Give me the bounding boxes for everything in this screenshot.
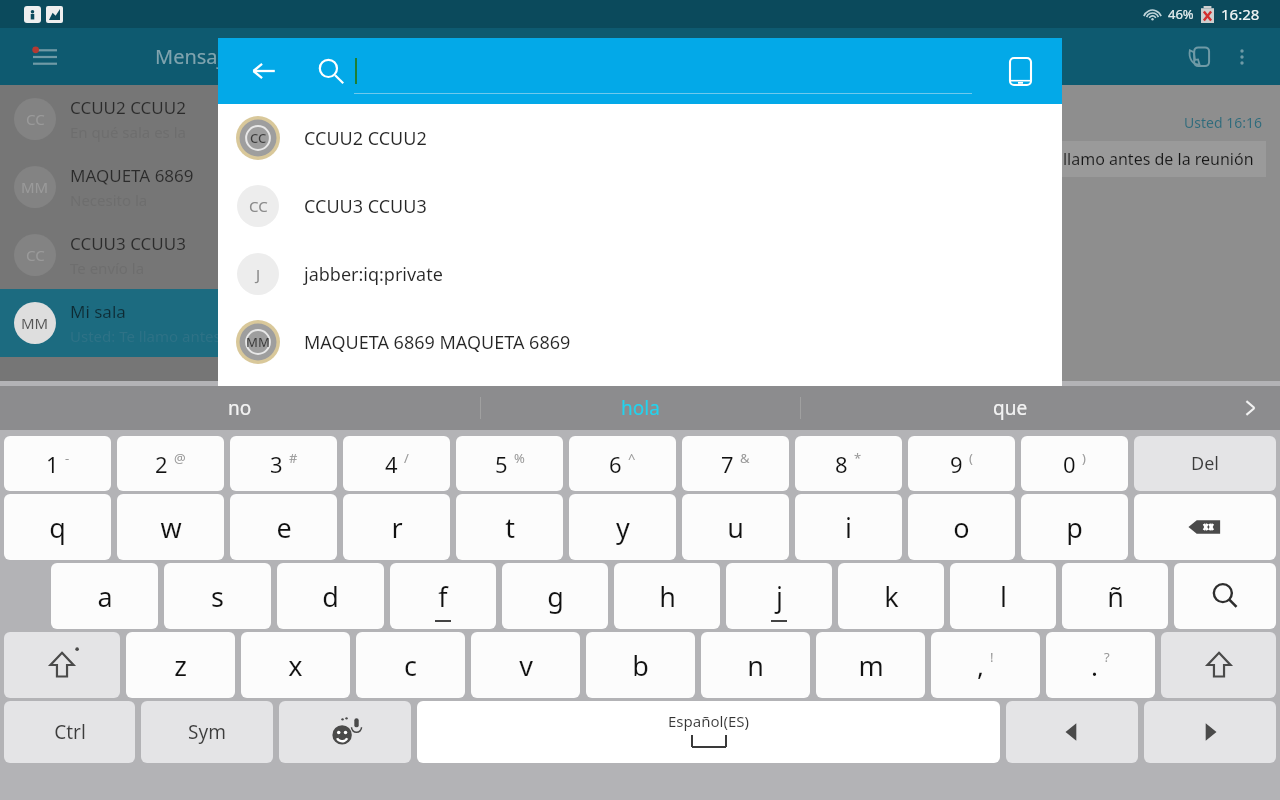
staticText: c [404, 647, 417, 684]
button[interactable]: ñ [1062, 563, 1168, 629]
button[interactable]: Emoji and voice input [279, 701, 411, 763]
button[interactable]: 1 [4, 436, 111, 491]
staticText: MAQUETA 6869 MAQUETA 6869 [304, 330, 571, 355]
button[interactable]: g [502, 563, 608, 629]
button[interactable]: f [390, 563, 496, 629]
button[interactable]: k [838, 563, 944, 629]
button[interactable]: MM [218, 308, 1062, 376]
staticText: % [514, 449, 525, 467]
button[interactable]: 3 [230, 436, 337, 491]
staticText: CCUU3 CCUU3 [304, 194, 427, 219]
staticText: u [727, 509, 744, 546]
staticText: z [174, 647, 187, 684]
staticText: o [953, 509, 970, 546]
button[interactable]: More suggestions [1220, 386, 1280, 430]
button[interactable]: u [682, 494, 789, 560]
staticText: ñ [1107, 578, 1124, 615]
button[interactable]: CC [0, 221, 232, 289]
staticText: h [659, 578, 676, 615]
button[interactable]: d [277, 563, 384, 629]
button[interactable]: n [701, 632, 810, 698]
button[interactable]: t [456, 494, 563, 560]
button[interactable]: a [51, 563, 158, 629]
button[interactable]: q [4, 494, 111, 560]
button[interactable]: 9 [908, 436, 1015, 491]
button[interactable]: p [1021, 494, 1128, 560]
button[interactable]: no [0, 386, 480, 430]
staticText: ^ [628, 449, 636, 467]
button[interactable]: Call [1176, 34, 1222, 80]
button[interactable]: Space [417, 701, 1000, 763]
button[interactable]: 7 [682, 436, 789, 491]
button[interactable]: Ctrl [4, 701, 135, 763]
button[interactable]: hola [481, 386, 800, 430]
staticText: Te envío la documentación [70, 258, 232, 278]
staticText: MM [21, 177, 49, 197]
button[interactable]: Search [1174, 563, 1276, 629]
button[interactable]: c [356, 632, 465, 698]
button[interactable]: . [1046, 632, 1155, 698]
button[interactable]: que [801, 386, 1220, 430]
button[interactable]: Shift [1161, 632, 1276, 698]
button[interactable]: Device [998, 49, 1042, 93]
button[interactable]: v [471, 632, 580, 698]
button[interactable]: Shift [4, 632, 120, 698]
staticText: que [993, 395, 1028, 421]
button[interactable]: Backspace [1134, 494, 1276, 560]
staticText: q [49, 509, 66, 546]
button[interactable]: 5 [456, 436, 563, 491]
staticText: e [276, 509, 292, 546]
staticText: Usted 16:16 [1184, 113, 1262, 132]
button[interactable]: e [230, 494, 337, 560]
button[interactable]: , [931, 632, 1040, 698]
button[interactable]: b [586, 632, 695, 698]
staticText: 5 [495, 449, 508, 479]
button[interactable]: 6 [569, 436, 676, 491]
staticText: Mi sala [70, 300, 126, 323]
button[interactable]: Cursor left [1006, 701, 1138, 763]
button[interactable]: x [241, 632, 350, 698]
staticText: d [322, 578, 339, 615]
staticText: Necesito la presentación [70, 190, 232, 210]
staticText: & [740, 449, 750, 467]
staticText: i [845, 509, 852, 546]
button[interactable]: MM [0, 289, 232, 357]
staticText: Usted: Te llamo antes de la reunión [70, 326, 232, 346]
staticText: - [65, 449, 70, 467]
button[interactable]: MM [0, 153, 232, 221]
button[interactable]: o [908, 494, 1015, 560]
staticText: Mensajes [155, 43, 244, 70]
staticText: n [747, 647, 764, 684]
staticText: v [519, 647, 533, 684]
button[interactable]: Cursor right [1144, 701, 1276, 763]
staticText: y [616, 509, 630, 546]
button[interactable]: 2 [117, 436, 224, 491]
button[interactable]: Del [1134, 436, 1276, 491]
button[interactable]: 0 [1021, 436, 1128, 491]
button[interactable]: w [117, 494, 224, 560]
button[interactable]: 8 [795, 436, 902, 491]
button[interactable]: CC [0, 85, 232, 153]
button[interactable]: Back [244, 51, 284, 91]
button[interactable]: r [343, 494, 450, 560]
button[interactable]: z [126, 632, 235, 698]
staticText: x [288, 647, 303, 684]
button[interactable]: j [726, 563, 832, 629]
button[interactable]: i [795, 494, 902, 560]
staticText: Sym [188, 719, 226, 745]
button[interactable]: h [614, 563, 720, 629]
button[interactable]: s [164, 563, 271, 629]
button[interactable]: More options [1222, 37, 1262, 77]
button[interactable]: Sym [141, 701, 273, 763]
button[interactable]: CC [218, 104, 1062, 172]
staticText: 9 [950, 449, 963, 479]
button[interactable]: l [950, 563, 1056, 629]
staticText: ) [1082, 449, 1086, 467]
staticText: j [776, 578, 783, 615]
button[interactable]: J [218, 240, 1062, 308]
button[interactable]: 4 [343, 436, 450, 491]
button[interactable]: Menu [24, 36, 66, 78]
button[interactable]: y [569, 494, 676, 560]
button[interactable]: m [816, 632, 925, 698]
button[interactable]: CC [218, 172, 1062, 240]
